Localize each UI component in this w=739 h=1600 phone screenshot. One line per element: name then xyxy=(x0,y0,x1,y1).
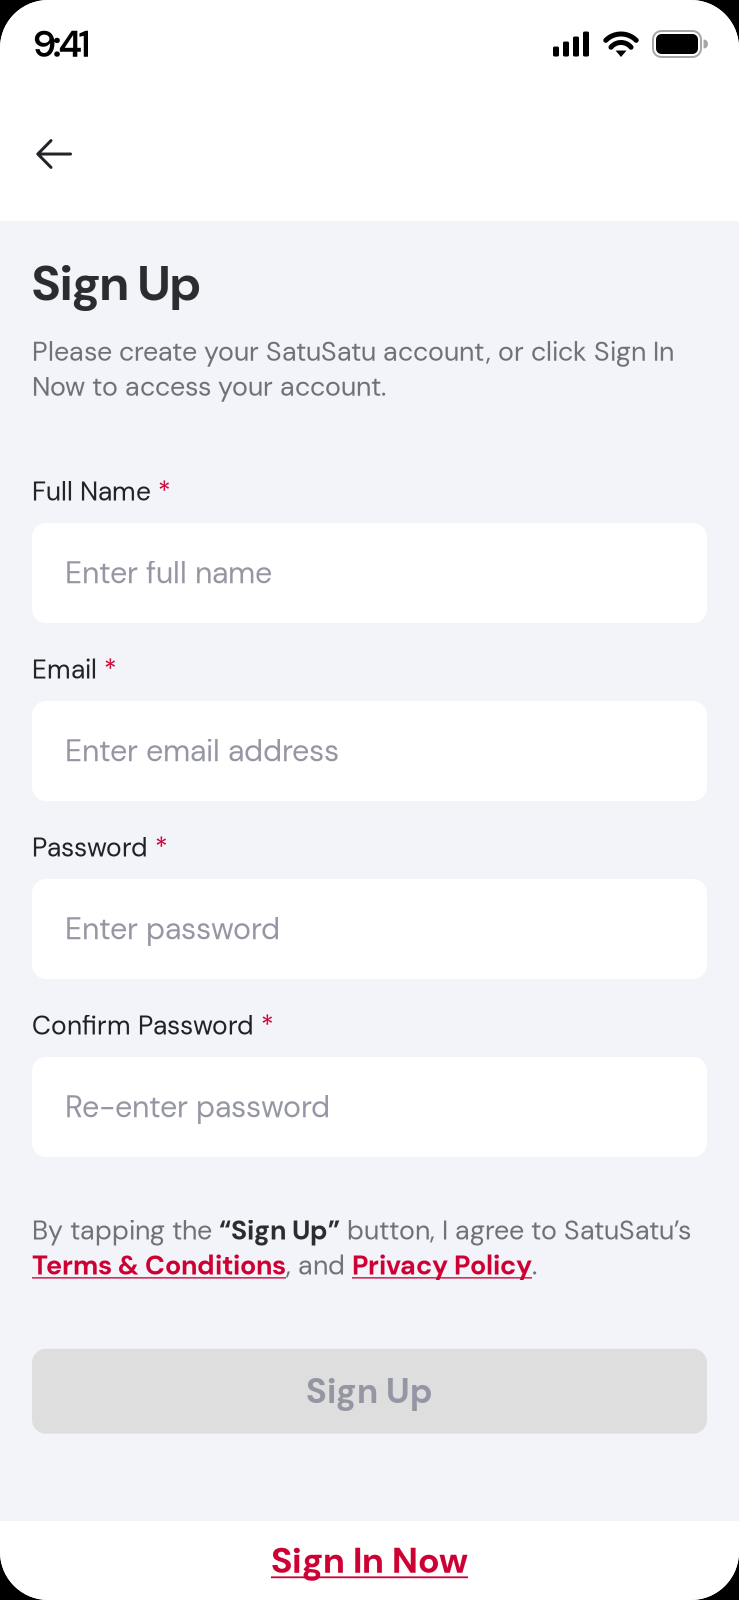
staticText: Enter password xyxy=(65,909,280,949)
staticText: Confirm Password * xyxy=(32,1008,274,1043)
staticText: Password * xyxy=(32,830,168,865)
staticText: 9:41 xyxy=(33,20,90,68)
button[interactable]: Sign Up xyxy=(32,1349,707,1434)
staticText: Sign Up xyxy=(32,251,200,315)
staticText: Sign Up xyxy=(306,1369,433,1414)
staticText: Enter email address xyxy=(65,731,339,771)
staticText: Please create your SatuSatu account, or … xyxy=(32,334,674,404)
staticText: Enter full name xyxy=(65,553,272,593)
staticText: Email * xyxy=(32,652,117,687)
button[interactable]: Sign In Now xyxy=(249,1523,490,1598)
button[interactable]: Back xyxy=(0,88,102,195)
staticText: By tapping the “Sign Up” button, I agree… xyxy=(32,1213,691,1283)
staticText: Full Name * xyxy=(32,474,171,509)
staticText: Sign In Now xyxy=(271,1537,468,1584)
staticText: Re-enter password xyxy=(65,1087,330,1127)
